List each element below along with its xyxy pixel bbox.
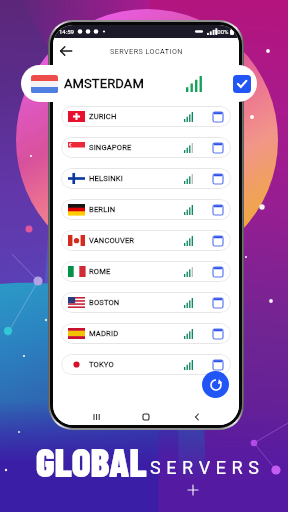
button[interactable]: Recent apps: [88, 409, 104, 425]
button[interactable]: BERLIN: [61, 199, 231, 220]
staticText: 14:59: [59, 28, 74, 35]
button[interactable]: BOSTON: [61, 292, 231, 313]
staticText: SINGAPORE: [89, 143, 132, 152]
staticText: AMSTERDAM: [64, 76, 144, 91]
staticText: ROME: [89, 267, 111, 276]
staticText: MADRID: [89, 329, 119, 338]
staticText: BERLIN: [89, 205, 116, 214]
staticText: SERVERS LOCATION: [110, 47, 183, 55]
staticText: SERVERS: [150, 457, 265, 478]
button[interactable]: Back: [189, 409, 205, 425]
button[interactable]: Refresh: [202, 371, 229, 398]
staticText: GLOBAL: [36, 438, 147, 485]
button[interactable]: SINGAPORE: [61, 137, 231, 158]
button[interactable]: TOKYO: [61, 354, 231, 375]
button[interactable]: AMSTERDAM: [21, 65, 257, 102]
staticText: 100%: [214, 28, 229, 35]
button[interactable]: MADRID: [61, 323, 231, 344]
button[interactable]: HELSINKI: [61, 168, 231, 189]
button[interactable]: ZURICH: [61, 106, 231, 127]
staticText: HELSINKI: [89, 174, 123, 183]
staticText: TOKYO: [89, 360, 114, 369]
staticText: ZURICH: [89, 112, 117, 121]
button[interactable]: Home: [138, 409, 154, 425]
staticText: VANCOUVER: [89, 236, 135, 245]
button[interactable]: ROME: [61, 261, 231, 282]
button[interactable]: Back: [57, 42, 75, 60]
button[interactable]: VANCOUVER: [61, 230, 231, 251]
staticText: BOSTON: [89, 298, 120, 307]
